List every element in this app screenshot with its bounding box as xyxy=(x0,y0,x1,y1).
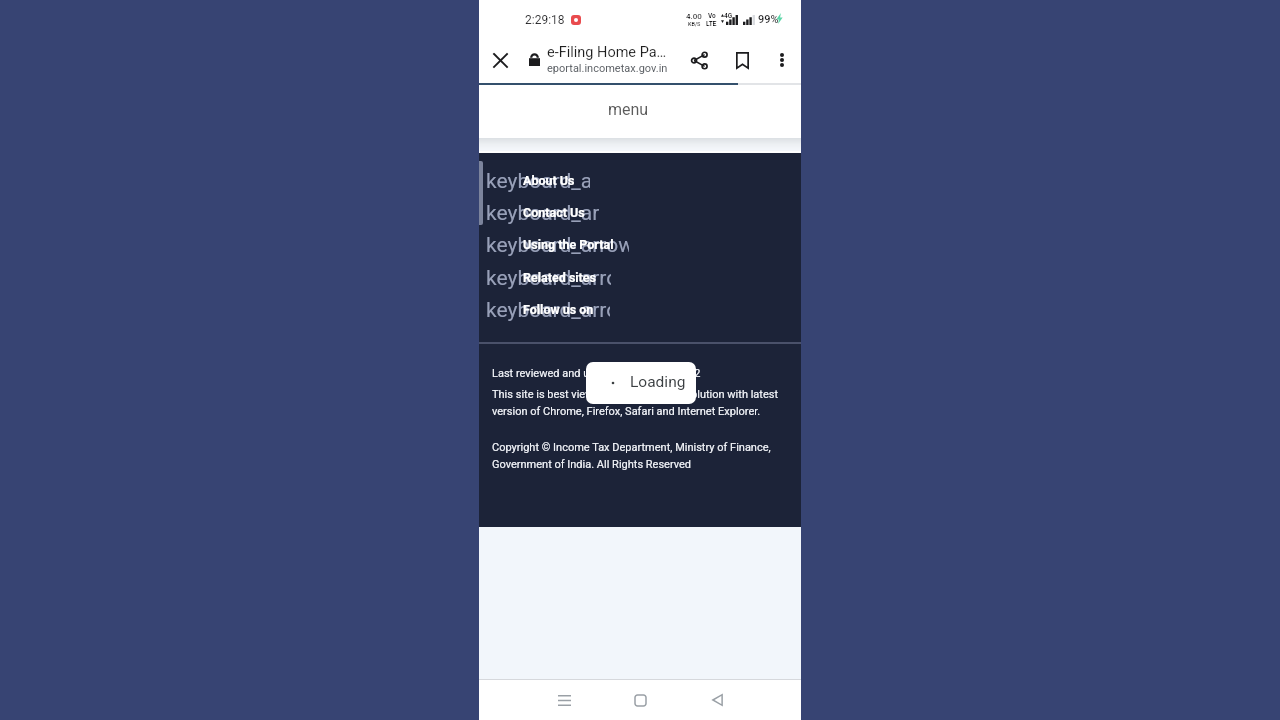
staticText: This site is best viewed in 1024 * 768 r… xyxy=(492,388,779,417)
button[interactable]: keyboard_arrow_right xyxy=(479,294,801,326)
button[interactable]: Close xyxy=(482,42,518,78)
staticText: keyboard_arrow_right xyxy=(486,266,611,291)
staticText: Follow us on xyxy=(523,302,594,317)
staticText: keyboard_arrow_right xyxy=(486,201,599,226)
button[interactable]: keyboard_arrow_right xyxy=(479,165,801,197)
staticText: Loading xyxy=(630,373,686,391)
button[interactable]: keyboard_arrow_right xyxy=(479,197,801,229)
button[interactable]: Back xyxy=(699,682,735,718)
button[interactable]: Share xyxy=(681,42,717,78)
button[interactable]: More options xyxy=(764,42,800,78)
staticText: eportal.incometax.gov.in xyxy=(547,62,668,75)
staticText: About Us xyxy=(523,173,575,188)
staticText: Vo xyxy=(708,12,716,20)
button[interactable]: e-Filing Home Pa… xyxy=(523,42,678,78)
staticText: 4G xyxy=(724,12,733,20)
staticText: Last reviewed and updated on 10 Oct 2022 xyxy=(492,367,701,380)
staticText: keyboard_arrow_right xyxy=(486,298,610,323)
button[interactable]: keyboard_arrow_right xyxy=(479,262,801,294)
staticText: KB/S xyxy=(688,21,701,27)
button[interactable]: Bookmark xyxy=(724,42,760,78)
staticText: Using the Portal xyxy=(523,237,614,252)
button[interactable]: keyboard_arrow_right xyxy=(479,229,801,261)
staticText: Copyright © Income Tax Department, Minis… xyxy=(492,441,771,470)
staticText: e-Filing Home Pa… xyxy=(547,44,667,61)
staticText: keyboard_arrow_right xyxy=(486,169,590,194)
staticText: 2:29:18 xyxy=(525,13,565,27)
staticText: LTE xyxy=(706,20,717,28)
staticText: 4.00 xyxy=(686,12,702,21)
button[interactable]: Home xyxy=(622,682,658,718)
staticText: keyboard_arrow_right xyxy=(486,233,629,258)
staticText: Contact Us xyxy=(523,205,585,220)
button[interactable]: Recent apps xyxy=(546,682,582,718)
staticText: 99% xyxy=(758,13,779,26)
staticText: Related sites xyxy=(523,270,597,285)
staticText: menu xyxy=(608,100,649,119)
